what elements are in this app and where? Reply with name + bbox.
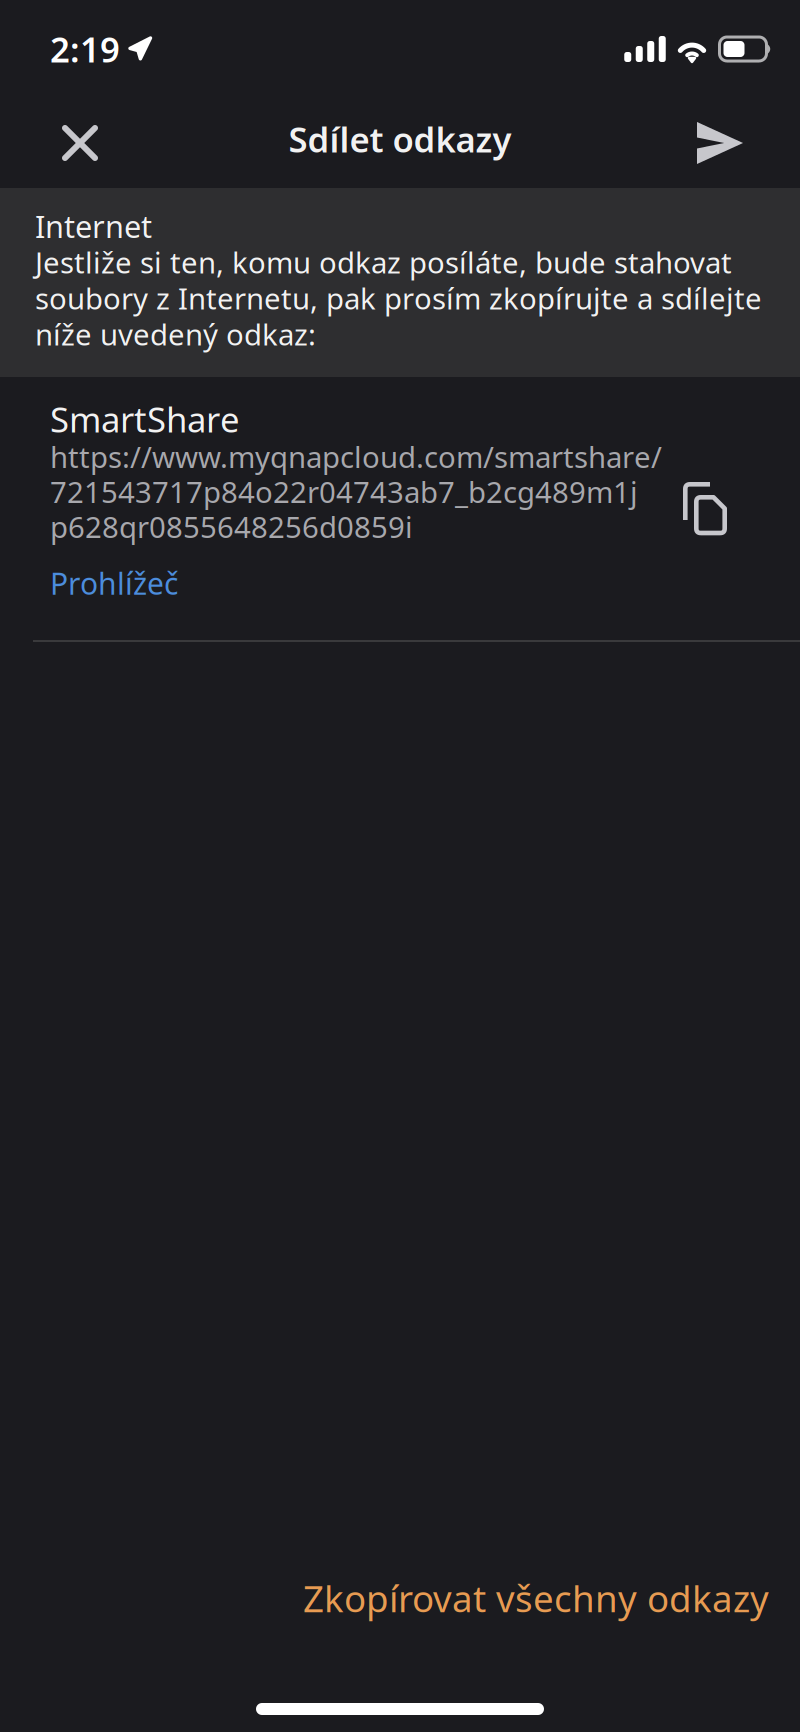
button[interactable]: Send (670, 101, 770, 185)
staticText: https://www.myqnapcloud.com/smartshare/ (50, 436, 662, 476)
button[interactable]: Zkopírovat všechny odkazy (303, 1566, 800, 1630)
staticText: Jestliže si ten, komu odkaz posíláte, bu… (35, 242, 732, 281)
staticText: Internet (35, 206, 152, 246)
button[interactable]: Prohlížeč (50, 544, 178, 606)
staticText: níže uvedený odkaz: (35, 314, 316, 353)
staticText: Prohlížeč (50, 563, 178, 603)
staticText: soubory z Internetu, pak prosím zkopíruj… (35, 278, 762, 317)
staticText: Zkopírovat všechny odkazy (303, 1573, 769, 1623)
button[interactable]: Close (30, 101, 130, 185)
staticText: 2:19 (50, 25, 120, 73)
staticText: p628qr0855648256d0859i (50, 506, 413, 546)
button[interactable]: Zkopírovat odkaz (683, 399, 727, 536)
staticText: SmartShare (50, 395, 240, 443)
staticText: Sdílet odkazy (288, 116, 511, 162)
staticText: 721543717p84o22r04743ab7_b2cg489m1j (50, 471, 638, 511)
